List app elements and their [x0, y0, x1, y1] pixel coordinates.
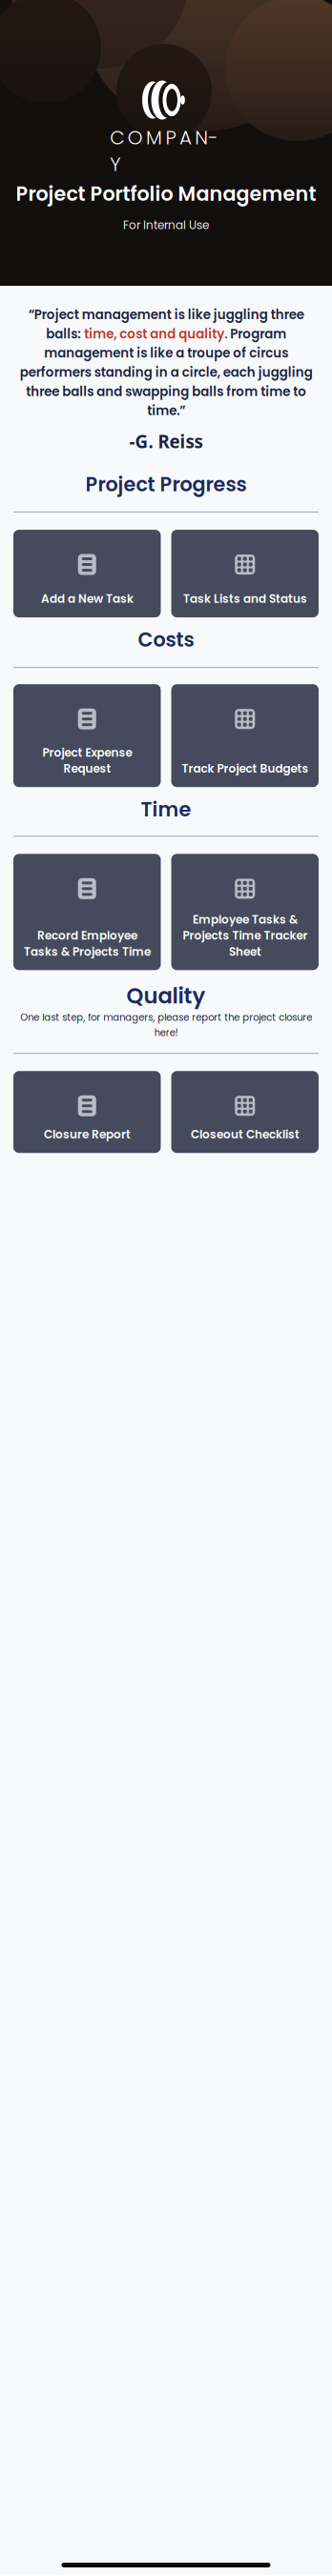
- staticText: Closeout Checklist: [191, 1127, 299, 1143]
- staticText: Add a New Task: [41, 591, 133, 607]
- button[interactable]: Closure Report: [13, 1071, 161, 1153]
- button[interactable]: Project Expense Request: [13, 684, 161, 787]
- staticText: Project Expense Request: [42, 745, 132, 777]
- staticText: Closure Report: [44, 1127, 131, 1143]
- staticText: “Project management is like juggling thr…: [20, 306, 312, 420]
- staticText: Employee Tasks & Projects Time Tracker S…: [182, 912, 307, 960]
- staticText: Quality: [126, 981, 206, 1011]
- staticText: Costs: [138, 626, 194, 654]
- staticText: COMPANY: [110, 124, 222, 151]
- staticText: One last step, for managers, please repo…: [20, 1011, 312, 1039]
- button[interactable]: Employee Tasks & Projects Time Tracker S…: [171, 854, 319, 970]
- staticText: Track Project Budgets: [181, 761, 308, 777]
- button[interactable]: Closeout Checklist: [171, 1071, 319, 1153]
- button[interactable]: Task Lists and Status: [171, 530, 319, 617]
- staticText: For Internal Use: [123, 217, 209, 233]
- staticText: Project Progress: [85, 471, 247, 498]
- staticText: Time: [141, 796, 191, 823]
- staticText: Record Employee Tasks & Projects Time: [24, 928, 151, 960]
- staticText: Project Portfolio Management: [16, 180, 316, 208]
- button[interactable]: Add a New Task: [13, 530, 161, 617]
- staticText: Task Lists and Status: [183, 591, 307, 607]
- button[interactable]: Record Employee Tasks & Projects Time: [13, 854, 161, 970]
- staticText: -G. Reiss: [129, 429, 203, 453]
- button[interactable]: Track Project Budgets: [171, 684, 319, 787]
